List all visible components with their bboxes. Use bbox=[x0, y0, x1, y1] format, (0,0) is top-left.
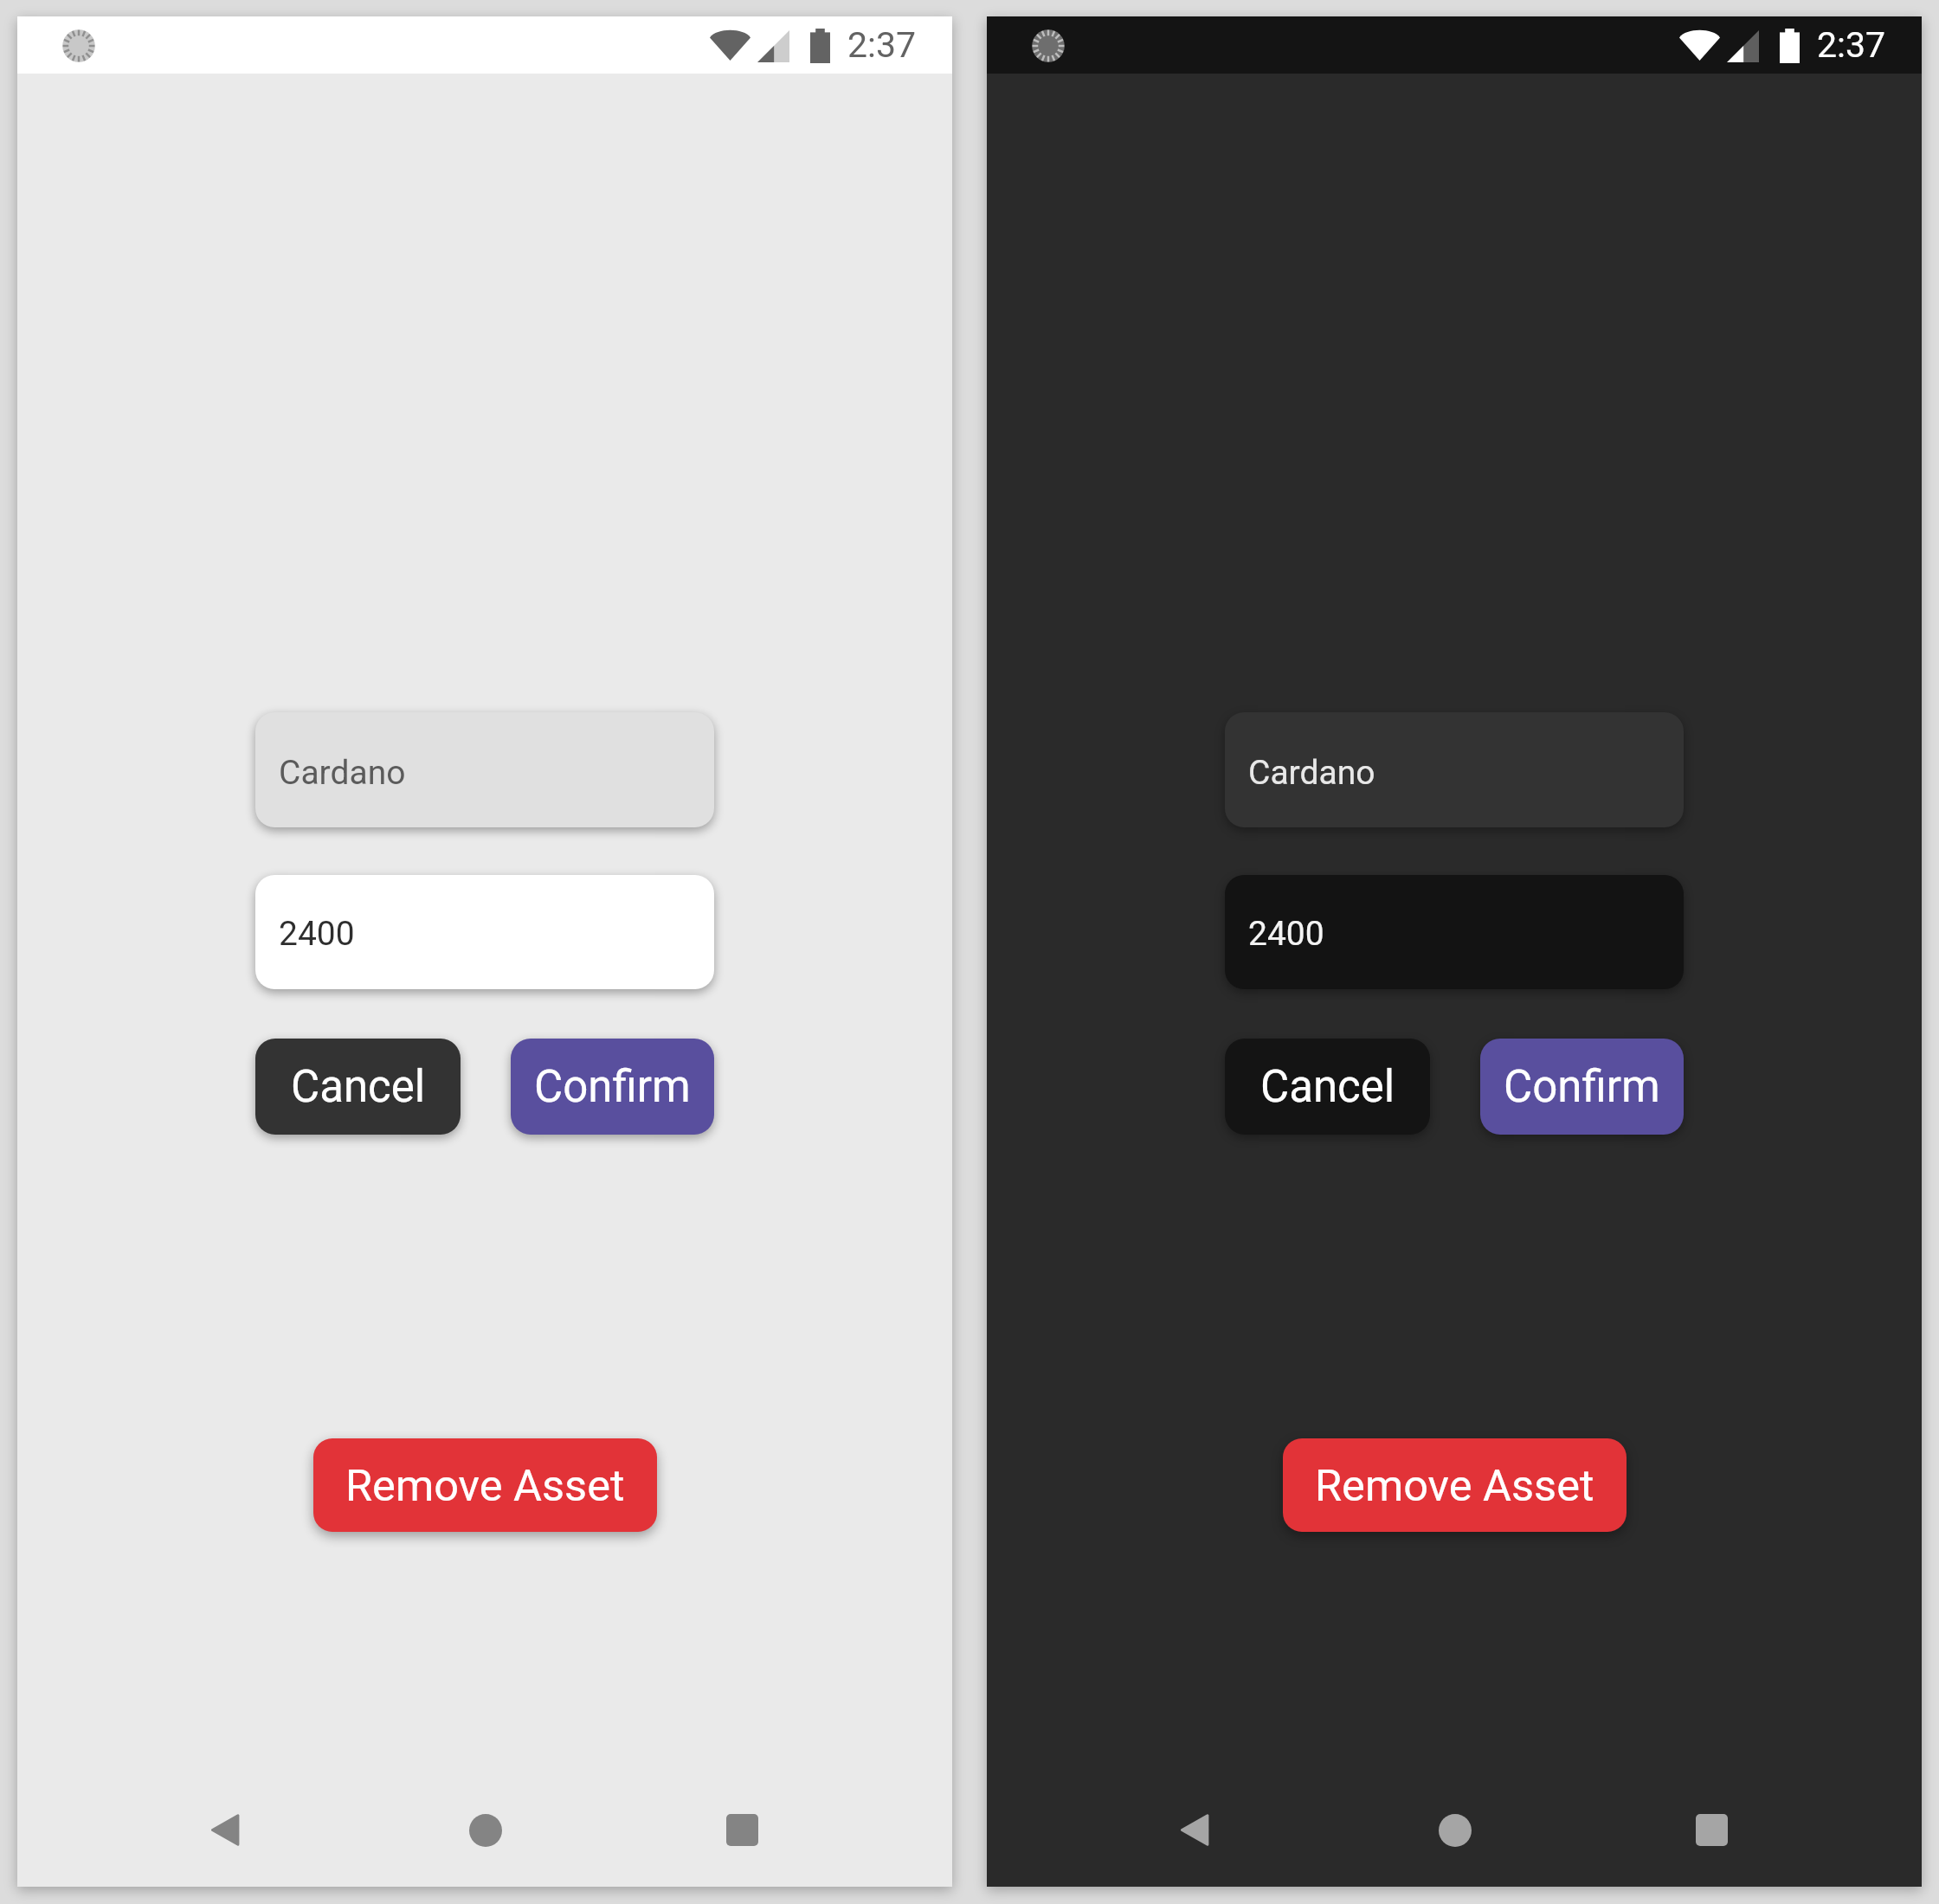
button[interactable]: 2400 bbox=[255, 875, 714, 989]
staticText: 2:37 bbox=[847, 24, 917, 66]
staticText: 2:37 bbox=[1817, 24, 1886, 66]
staticText: Cardano bbox=[279, 753, 406, 793]
button[interactable]: Confirm bbox=[1480, 1039, 1684, 1135]
staticText: Remove Asset bbox=[1315, 1460, 1594, 1511]
button[interactable]: Home bbox=[1362, 1780, 1547, 1880]
staticText: Confirm bbox=[534, 1061, 691, 1113]
button[interactable]: Remove Asset bbox=[1283, 1438, 1627, 1532]
button[interactable]: Remove Asset bbox=[313, 1438, 657, 1532]
button[interactable]: Cardano bbox=[255, 712, 714, 827]
button[interactable]: 2400 bbox=[1225, 875, 1684, 989]
button[interactable]: Recent apps bbox=[650, 1780, 834, 1880]
button[interactable]: Cancel bbox=[1225, 1039, 1430, 1135]
staticText: 2400 bbox=[279, 914, 355, 954]
button[interactable]: Back bbox=[132, 1780, 317, 1880]
button[interactable]: Home bbox=[393, 1780, 577, 1880]
button[interactable]: Cardano bbox=[1225, 712, 1684, 827]
button[interactable]: Recent apps bbox=[1620, 1780, 1804, 1880]
staticText: Cancel bbox=[291, 1061, 426, 1113]
staticText: Cardano bbox=[1248, 753, 1375, 793]
staticText: Confirm bbox=[1504, 1061, 1660, 1113]
staticText: Cancel bbox=[1260, 1061, 1395, 1113]
staticText: Remove Asset bbox=[345, 1460, 625, 1511]
button[interactable]: Back bbox=[1102, 1780, 1286, 1880]
button[interactable]: Confirm bbox=[511, 1039, 714, 1135]
button[interactable]: Cancel bbox=[255, 1039, 461, 1135]
staticText: 2400 bbox=[1248, 914, 1324, 954]
